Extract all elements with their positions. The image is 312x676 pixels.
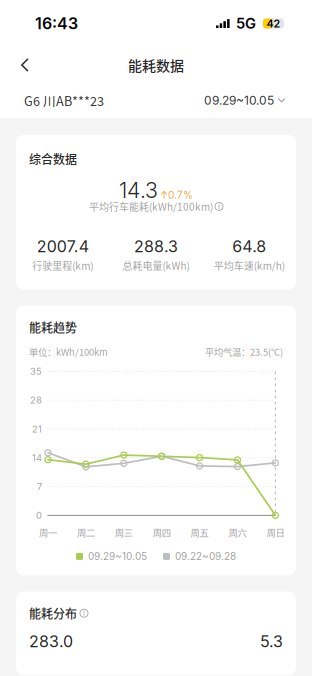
staticText: 周一 — [39, 526, 57, 539]
staticText: 09.29~10.05 — [204, 93, 274, 108]
staticText: 0 — [36, 510, 42, 521]
staticText: 42 — [266, 17, 280, 30]
staticText: 28 — [30, 394, 42, 406]
staticText: 09.22~09.28 — [175, 550, 236, 562]
staticText: 14.3 — [119, 177, 158, 203]
staticText: 14 — [32, 452, 42, 463]
staticText: 283.0 — [29, 632, 73, 651]
staticText: 5G — [236, 15, 256, 32]
staticText: 周二 — [77, 526, 95, 539]
staticText: 能耗趋势 — [29, 318, 77, 336]
staticText: 平均车速(km/h) — [214, 258, 285, 272]
staticText: 平均气温：23.5(°C) — [205, 345, 283, 358]
staticText: 周六 — [228, 526, 246, 539]
staticText: i — [83, 609, 85, 618]
staticText: 周日 — [266, 526, 284, 539]
staticText: 35 — [30, 366, 42, 377]
staticText: 5.3 — [260, 632, 283, 651]
staticText: 7 — [37, 481, 42, 492]
staticText: 周四 — [153, 526, 171, 539]
staticText: i — [218, 202, 220, 211]
staticText: 总耗电量(kWh) — [122, 258, 189, 272]
staticText: 288.3 — [134, 237, 178, 256]
button[interactable]: 09.29~10.05 — [204, 93, 285, 108]
button[interactable]: Back — [0, 49, 43, 80]
staticText: 能耗分布 — [29, 604, 77, 622]
staticText: 16:43 — [35, 14, 78, 33]
staticText: 综合数据 — [29, 150, 77, 167]
staticText: G6 川AB***23 — [24, 91, 104, 110]
staticText: 周三 — [115, 526, 133, 539]
staticText: 周五 — [191, 526, 209, 539]
staticText: 能耗数据 — [128, 55, 184, 75]
staticText: 09.29~10.05 — [88, 550, 147, 562]
staticText: 64.8 — [232, 237, 266, 256]
staticText: 单位：kWh/100km — [29, 345, 108, 358]
staticText: 2007.4 — [37, 237, 89, 256]
staticText: ↑0.7% — [160, 189, 193, 201]
staticText: 平均行车能耗(kWh/100km) — [89, 199, 213, 214]
staticText: 21 — [32, 423, 42, 435]
staticText: 行驶里程(km) — [32, 258, 93, 272]
